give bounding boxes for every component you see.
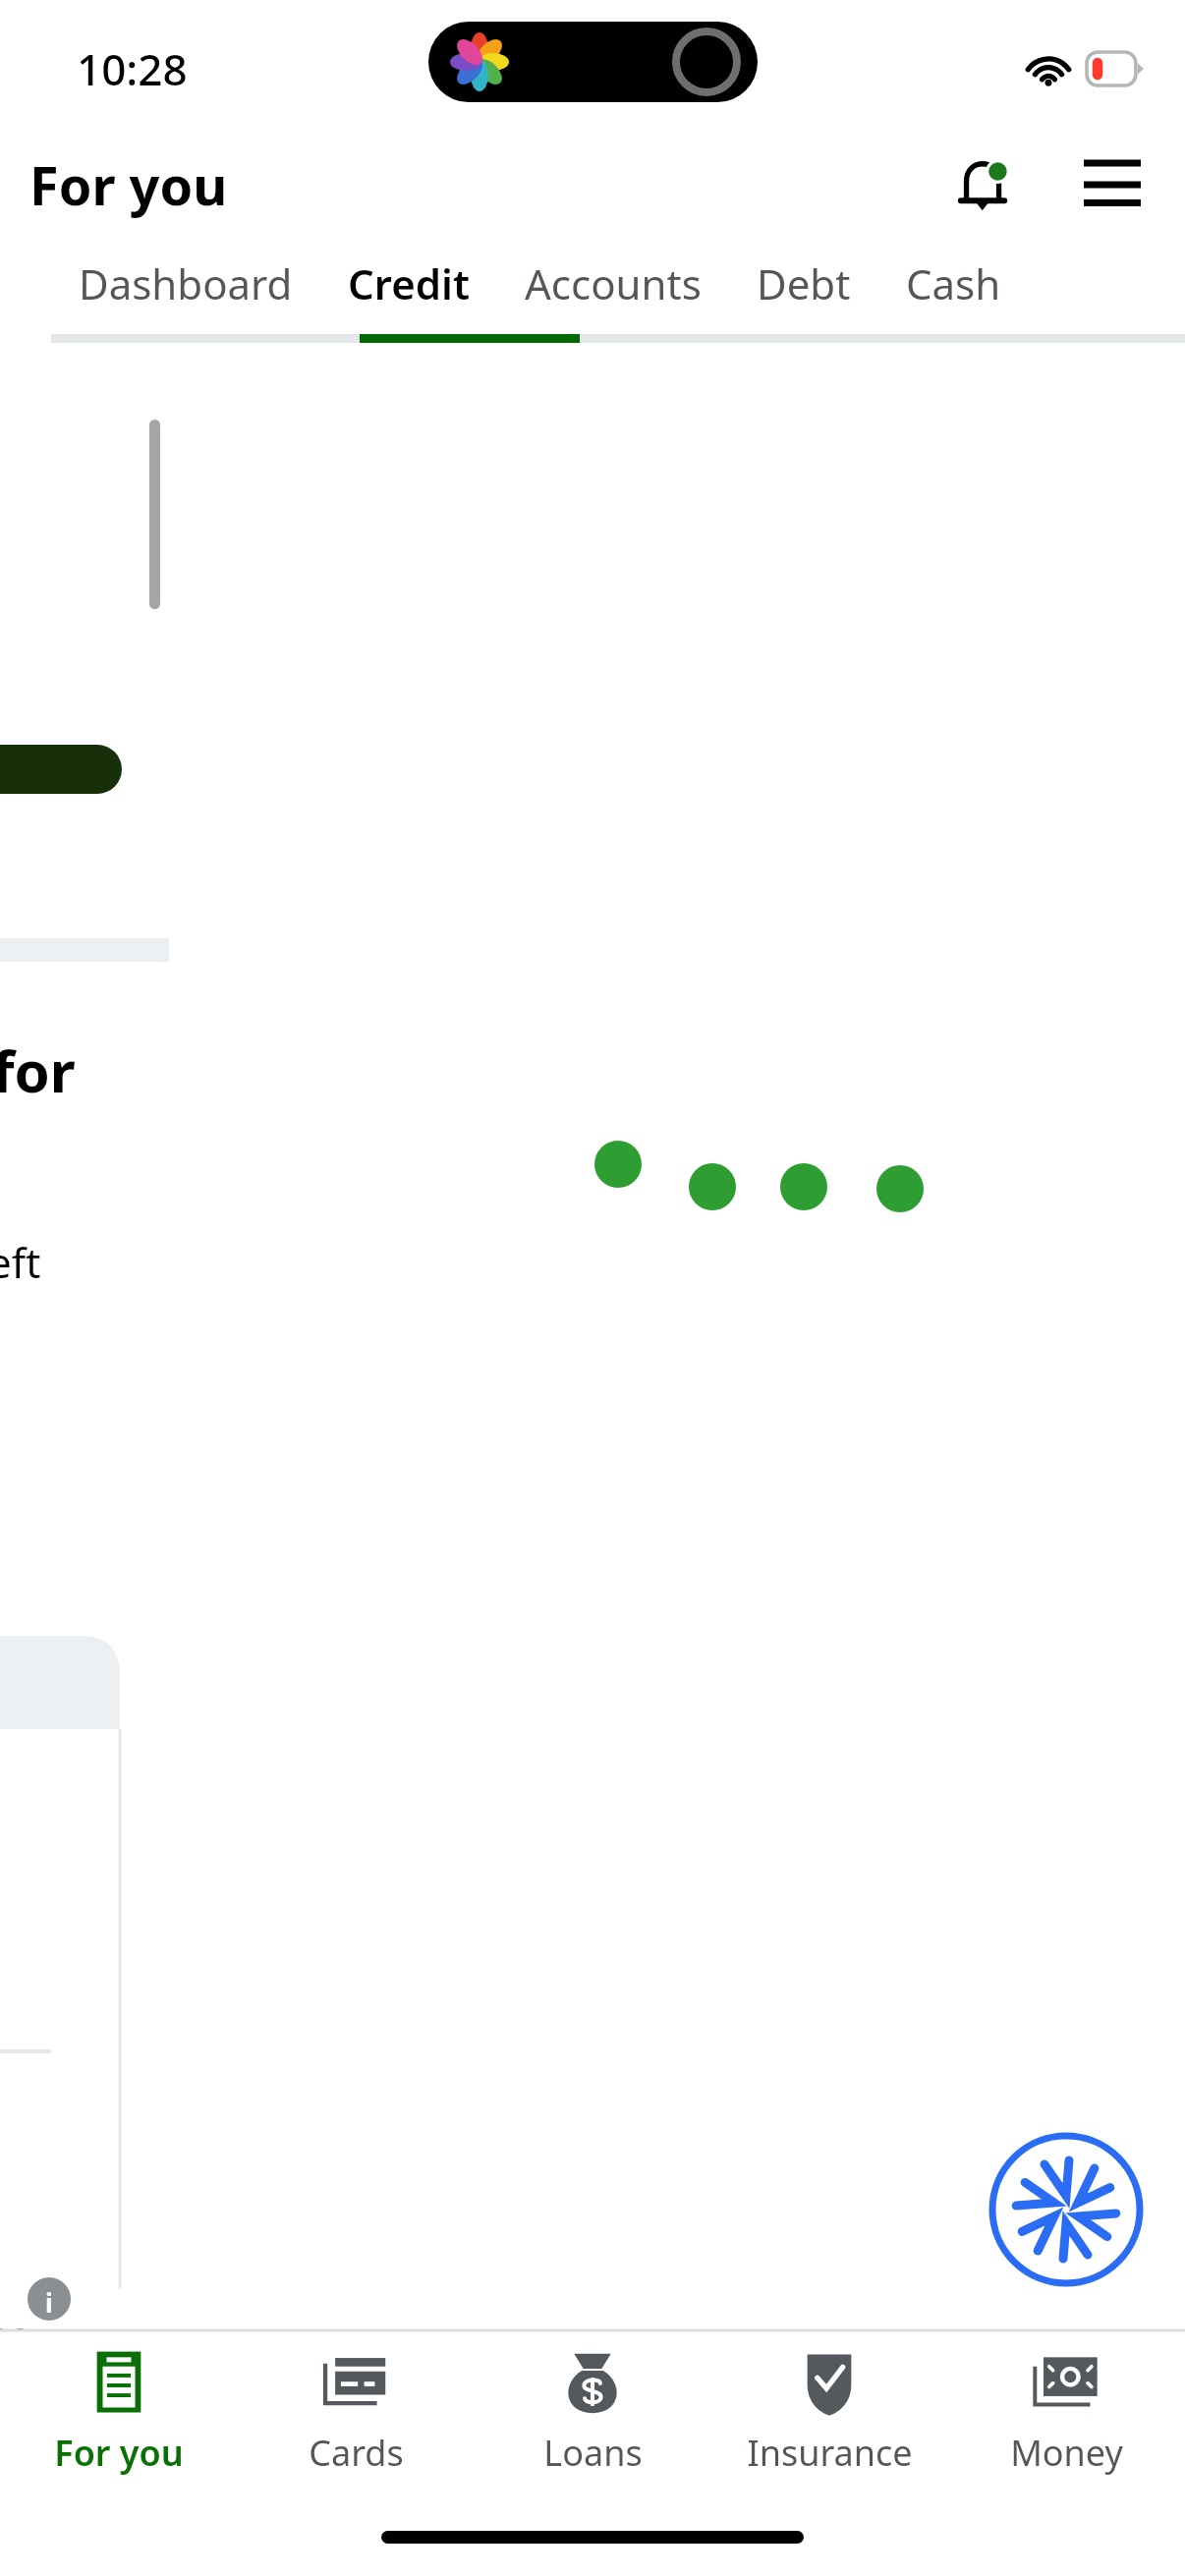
button[interactable]: For you — [1, 2330, 237, 2497]
button[interactable]: Assistant — [992, 2136, 1140, 2283]
button[interactable]: Cards — [238, 2330, 474, 2497]
button[interactable]: Insurance — [711, 2330, 947, 2497]
button[interactable]: Dashboard — [51, 232, 320, 335]
staticText: Cards — [309, 2429, 404, 2477]
staticText: Money — [1010, 2429, 1123, 2477]
staticText: Debt — [757, 255, 851, 311]
button[interactable]: Credit — [320, 232, 497, 335]
staticText: for — [0, 1032, 76, 1109]
staticText: Loans — [543, 2429, 643, 2477]
staticText: For you — [29, 148, 228, 221]
button[interactable]: Cash — [878, 232, 1029, 335]
staticText: 10:28 — [77, 39, 188, 98]
button[interactable]: Menu — [1065, 138, 1159, 232]
button[interactable]: Notifications — [937, 138, 1032, 232]
staticText: Credit — [348, 255, 470, 311]
button[interactable]: Money — [948, 2330, 1184, 2497]
staticText: ne — [0, 2309, 30, 2360]
staticText: i — [45, 2285, 53, 2320]
button[interactable]: Debt — [729, 232, 878, 335]
staticText: eft — [0, 1234, 41, 1290]
staticText: Insurance — [747, 2429, 913, 2477]
staticText: Cash — [906, 255, 1001, 311]
staticText: Dashboard — [79, 255, 293, 311]
button[interactable]: Accounts — [497, 232, 729, 335]
staticText: For you — [54, 2429, 184, 2477]
button[interactable]: Loans — [475, 2330, 710, 2497]
staticText: Accounts — [525, 255, 702, 311]
